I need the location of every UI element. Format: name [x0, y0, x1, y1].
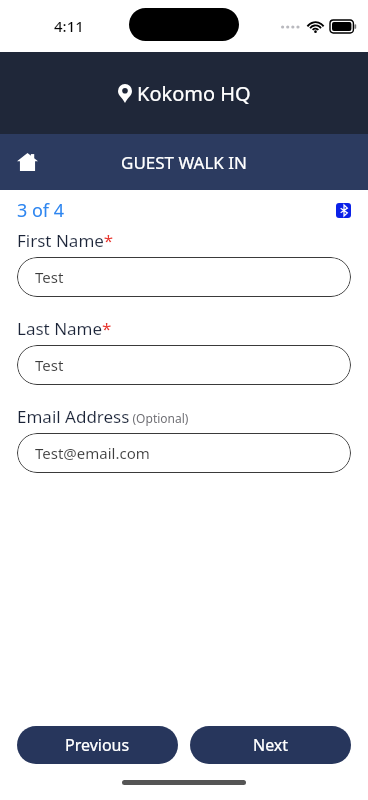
staticText: Last Name*: [17, 317, 112, 340]
staticText: 4:11: [54, 16, 84, 36]
staticText: First Name*: [17, 229, 114, 252]
staticText: Kokomo HQ: [137, 80, 251, 107]
staticText: Next: [253, 734, 289, 756]
staticText: Email Address (Optional): [17, 405, 189, 428]
staticText: Previous: [65, 734, 130, 756]
button[interactable]: Next: [190, 726, 351, 764]
button[interactable]: Home: [6, 141, 48, 183]
button[interactable]: Test@email.com: [17, 433, 351, 473]
button[interactable]: Previous: [17, 726, 178, 764]
button[interactable]: Test: [17, 257, 351, 297]
button[interactable]: Bluetooth: [336, 203, 351, 218]
staticText: Test@email.com: [35, 443, 150, 463]
staticText: GUEST WALK IN: [121, 151, 247, 174]
staticText: Test: [35, 267, 64, 287]
button[interactable]: Test: [17, 345, 351, 385]
staticText: 3 of 4: [17, 198, 65, 223]
staticText: Test: [35, 355, 64, 375]
